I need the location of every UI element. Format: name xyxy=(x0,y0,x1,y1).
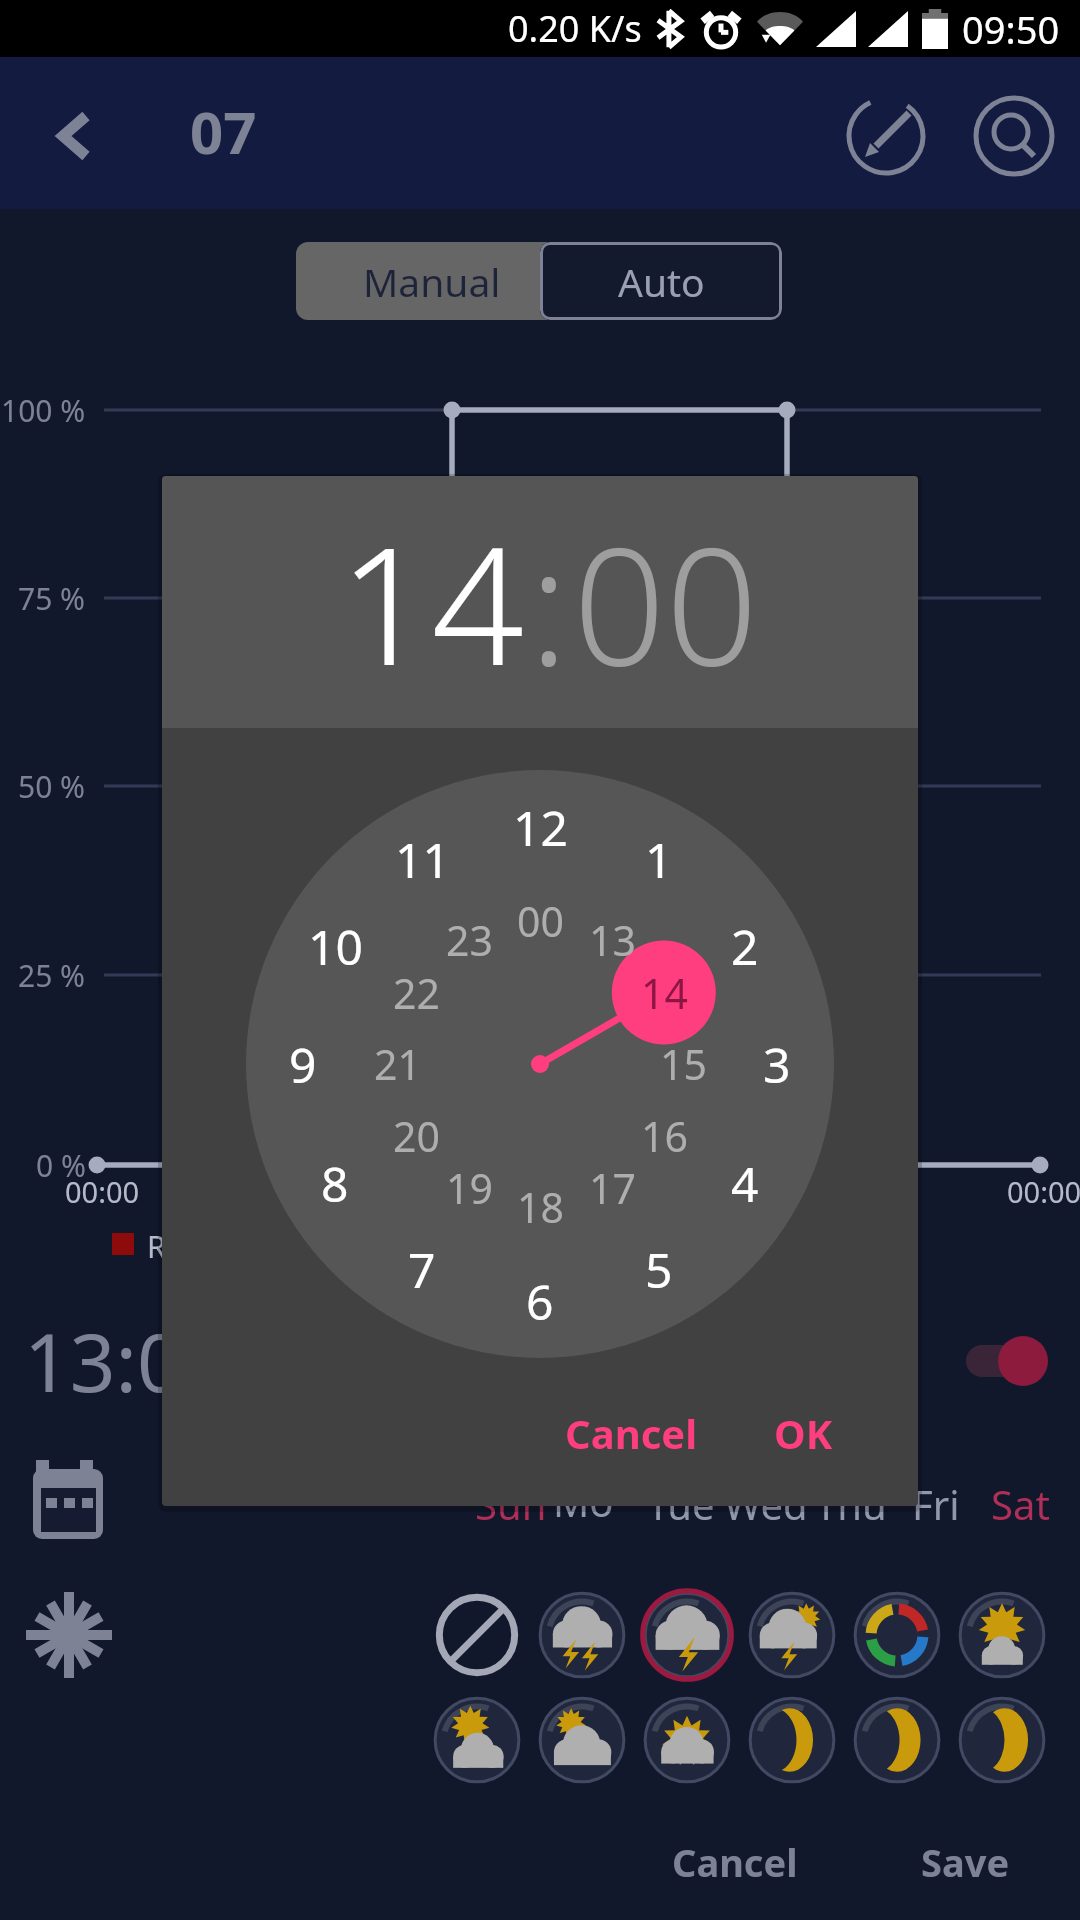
button[interactable]: Weather option 11 xyxy=(851,1694,943,1786)
button[interactable]: Weather option 2 xyxy=(536,1589,628,1681)
button[interactable]: 7 xyxy=(377,1233,467,1305)
button[interactable]: 22 xyxy=(371,962,461,1024)
button[interactable]: Search xyxy=(966,88,1062,184)
staticText: R xyxy=(147,1226,166,1267)
staticText: 3 xyxy=(763,1032,791,1097)
button[interactable]: 11 xyxy=(377,823,467,895)
button[interactable]: 4 xyxy=(700,1147,790,1219)
staticText: Fri xyxy=(912,1477,960,1531)
staticText: 20 xyxy=(393,1108,440,1164)
staticText: 0 % xyxy=(36,1145,86,1186)
button[interactable]: Weather option 10 xyxy=(746,1694,838,1786)
button[interactable]: Manual xyxy=(296,242,540,320)
button[interactable]: 1 xyxy=(614,823,704,895)
button[interactable]: Weather option 9 xyxy=(641,1694,733,1786)
staticText: 100 % xyxy=(1,390,86,431)
button[interactable]: 16 xyxy=(619,1105,709,1167)
staticText: Save xyxy=(921,1836,1010,1888)
button[interactable]: 21 xyxy=(352,1033,442,1095)
staticText: 00:00 xyxy=(1007,1172,1080,1211)
button[interactable]: Thu xyxy=(808,1474,893,1534)
button[interactable]: Calendar xyxy=(28,1455,110,1545)
button[interactable]: 00 xyxy=(495,890,585,952)
button[interactable]: 6 xyxy=(495,1265,585,1337)
button[interactable]: Weather option 5 xyxy=(851,1589,943,1681)
staticText: 13:00 xyxy=(24,1306,229,1415)
button[interactable]: Save xyxy=(905,1820,1025,1904)
button[interactable]: 00 xyxy=(569,492,763,713)
button[interactable]: Weather option 7 xyxy=(431,1694,523,1786)
staticText: Wed xyxy=(724,1477,808,1531)
button[interactable]: Tue xyxy=(638,1474,723,1534)
button[interactable]: 5 xyxy=(614,1233,704,1305)
staticText: 18 xyxy=(517,1179,564,1235)
button[interactable]: Enable schedule xyxy=(960,1330,1060,1392)
staticText: 50 % xyxy=(18,766,86,807)
staticText: 16 xyxy=(641,1108,688,1164)
staticText: : xyxy=(529,492,569,713)
staticText: Sun xyxy=(475,1477,547,1531)
staticText: 8 xyxy=(321,1151,349,1216)
button[interactable]: Weather option 1 xyxy=(431,1589,523,1681)
staticText: 00 xyxy=(573,492,759,713)
staticText: 0.20 K/s xyxy=(508,4,642,53)
staticText: Thu xyxy=(815,1477,887,1531)
staticText: Tue xyxy=(647,1477,715,1531)
staticText: Cancel xyxy=(672,1836,798,1888)
button[interactable]: 3 xyxy=(732,1028,822,1100)
button[interactable]: Wed xyxy=(723,1474,808,1534)
button[interactable]: Edit xyxy=(838,88,934,184)
button[interactable]: Cancel xyxy=(556,1387,706,1479)
button[interactable]: 17 xyxy=(567,1157,657,1219)
button[interactable]: 12 xyxy=(495,791,585,863)
staticText: 75 % xyxy=(18,578,86,619)
staticText: 2 xyxy=(731,914,759,979)
staticText: 19 xyxy=(446,1160,493,1216)
staticText: 25 % xyxy=(18,955,86,996)
staticText: 23 xyxy=(446,912,493,968)
staticText: 11 xyxy=(395,827,450,892)
button[interactable]: Mon xyxy=(553,1474,638,1534)
staticText: 5 xyxy=(645,1237,673,1302)
staticText: 14 xyxy=(641,965,688,1021)
button[interactable]: 2 xyxy=(700,910,790,982)
button[interactable]: 20 xyxy=(371,1105,461,1167)
button[interactable]: Sat xyxy=(978,1474,1063,1534)
button[interactable]: 10 xyxy=(290,910,380,982)
staticText: 07 xyxy=(190,92,257,171)
button[interactable]: Fri xyxy=(893,1474,978,1534)
button[interactable]: 14 xyxy=(335,492,529,713)
staticText: 9 xyxy=(289,1032,317,1097)
button[interactable]: Weather option 12 xyxy=(956,1694,1048,1786)
button[interactable]: Weather option 3 xyxy=(641,1589,733,1681)
button[interactable]: Snow xyxy=(26,1592,112,1678)
staticText: Mon xyxy=(553,1474,638,1534)
button[interactable]: Cancel xyxy=(655,1820,815,1904)
button[interactable]: Weather option 8 xyxy=(536,1694,628,1786)
staticText: 22 xyxy=(393,965,440,1021)
staticText: 15 xyxy=(660,1036,707,1092)
button[interactable]: OK xyxy=(748,1387,858,1479)
button[interactable]: Auto xyxy=(540,242,782,320)
button[interactable]: Weather option 4 xyxy=(746,1589,838,1681)
staticText: 12 xyxy=(513,795,568,860)
button[interactable]: 19 xyxy=(424,1157,514,1219)
staticText: 09:50 xyxy=(962,3,1060,55)
button[interactable]: Sun xyxy=(468,1474,553,1534)
button[interactable]: 8 xyxy=(290,1147,380,1219)
button[interactable]: 9 xyxy=(258,1028,348,1100)
button[interactable]: 15 xyxy=(638,1033,728,1095)
button[interactable]: 18 xyxy=(495,1176,585,1238)
staticText: 10 xyxy=(308,914,363,979)
button[interactable]: 14 xyxy=(619,962,709,1024)
staticText: 13 xyxy=(589,912,636,968)
staticText: Manual xyxy=(363,255,501,308)
staticText: 00:00 xyxy=(65,1172,140,1211)
button[interactable]: Weather option 6 xyxy=(956,1589,1048,1681)
button[interactable]: 23 xyxy=(424,909,514,971)
staticText: Auto xyxy=(618,255,705,308)
button[interactable]: Back xyxy=(34,98,110,174)
button[interactable]: 13 xyxy=(567,909,657,971)
staticText: 14 xyxy=(339,492,525,713)
staticText: 4 xyxy=(731,1151,759,1216)
